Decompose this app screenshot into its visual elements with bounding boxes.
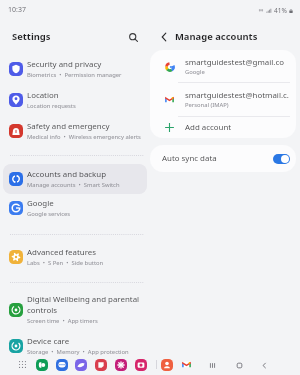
button[interactable]: Messages: [52, 355, 71, 374]
button[interactable]: Phone: [32, 355, 51, 374]
staticText: Security and privacy: [27, 59, 102, 70]
staticText: Accounts and backup: [27, 169, 107, 180]
staticText: Settings: [12, 30, 51, 43]
staticText: Labs • S Pen • Side button: [27, 259, 104, 267]
staticText: Google: [185, 68, 205, 76]
staticText: 41%: [274, 6, 287, 15]
staticText: Google services: [27, 210, 71, 218]
button[interactable]: Gmail: [177, 355, 196, 374]
button[interactable]: Camera: [131, 355, 150, 374]
staticText: Auto sync data: [162, 153, 217, 164]
button[interactable]: Search: [124, 28, 142, 46]
button[interactable]: Advanced features: [3, 242, 147, 272]
staticText: Location requests: [27, 102, 76, 110]
staticText: Advanced features: [27, 247, 96, 258]
button[interactable]: smartguidestest@gmail.com: [150, 50, 296, 82]
staticText: Digital Wellbeing and parental: [27, 294, 140, 305]
button[interactable]: Auto sync data: [150, 145, 296, 172]
button[interactable]: Google: [3, 193, 147, 223]
button[interactable]: Home: [232, 358, 246, 372]
staticText: Device care: [27, 336, 70, 347]
button[interactable]: Device care: [3, 331, 147, 361]
button[interactable]: Contacts: [157, 355, 176, 374]
staticText: 10:37: [8, 5, 26, 15]
button[interactable]: smartguidestest@hotmail.c...: [150, 83, 296, 116]
button[interactable]: Accounts and backup: [3, 164, 147, 194]
button[interactable]: Gallery: [111, 355, 130, 374]
button[interactable]: All apps: [16, 358, 29, 371]
button[interactable]: Auto sync data toggle: [273, 154, 290, 164]
staticText: Safety and emergency: [27, 121, 110, 132]
staticText: Storage • Memory • App protection: [27, 348, 129, 356]
staticText: Biometrics • Permission manager: [27, 71, 122, 79]
button[interactable]: Safety and emergency: [3, 116, 147, 146]
button[interactable]: Location: [3, 85, 147, 115]
button[interactable]: Internet: [71, 355, 90, 374]
staticText: smartguidestest@gmail.com: [185, 57, 290, 68]
staticText: Medical info • Wireless emergency alerts: [27, 133, 141, 141]
staticText: Google: [27, 198, 54, 209]
staticText: Location: [27, 90, 59, 101]
staticText: Manage accounts: [175, 30, 258, 43]
button[interactable]: Digital Wellbeing and parental: [3, 294, 147, 325]
button[interactable]: Add account: [150, 117, 296, 138]
button[interactable]: Back: [156, 29, 172, 45]
button[interactable]: Back: [257, 358, 271, 372]
button[interactable]: Notes: [91, 355, 110, 374]
button[interactable]: Recents: [205, 358, 219, 372]
button[interactable]: Security and privacy: [3, 54, 147, 84]
staticText: controls: [27, 305, 57, 316]
staticText: Screen time • App timers: [27, 317, 98, 325]
staticText: Personal (IMAP): [185, 101, 229, 109]
staticText: Manage accounts • Smart Switch: [27, 181, 120, 189]
staticText: smartguidestest@hotmail.c...: [185, 90, 290, 101]
staticText: Add account: [185, 122, 232, 133]
